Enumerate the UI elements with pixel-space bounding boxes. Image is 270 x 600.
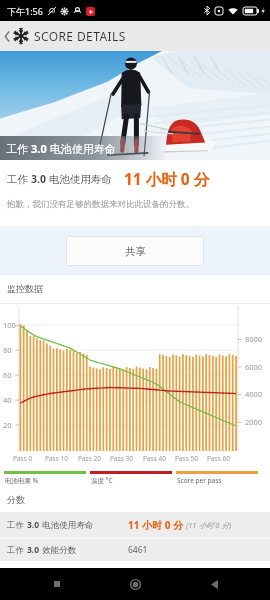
staticText: Pass 30 [110, 454, 133, 463]
staticText: 11 小时 0 分 [128, 518, 183, 532]
button[interactable]: Home [113, 568, 157, 600]
button[interactable]: Recents [35, 568, 79, 600]
staticText: 3.0 [31, 172, 46, 186]
staticText: 6461 [128, 544, 148, 556]
staticText: 2000 [245, 417, 263, 427]
staticText: 3.0 [27, 519, 40, 531]
staticText: 电池使用寿命 [46, 172, 112, 186]
staticText: 40 [3, 395, 12, 405]
staticText: (11 小时 0 分) [186, 520, 232, 530]
staticText: 3.0 [27, 544, 40, 556]
staticText: 效能分数 [40, 544, 77, 556]
staticText: 4000 [245, 389, 263, 399]
staticText: 分数 [7, 494, 25, 505]
staticText: Pass 0 [13, 454, 33, 463]
staticText: 工作 [7, 172, 31, 186]
staticText: Pass 20 [78, 454, 101, 463]
staticText: 工作 [7, 544, 27, 556]
staticText: 8000 [245, 334, 263, 344]
button[interactable]: 工作 [0, 513, 270, 537]
button[interactable]: 工作 [0, 539, 270, 561]
staticText: Pass 60 [207, 454, 230, 463]
staticText: Score per pass [177, 476, 222, 485]
staticText: 100 [3, 320, 16, 330]
staticText: 电池电量 % [5, 476, 39, 485]
staticText: 温度 °C [91, 476, 113, 485]
staticText: 电池使用寿命 [47, 141, 116, 156]
staticText: SCORE DETAILS [34, 28, 126, 44]
staticText: 监控数据 [7, 283, 43, 294]
staticText: 工作 [6, 141, 31, 156]
staticText: 电池使用寿命 [40, 519, 94, 531]
staticText: Pass 10 [45, 454, 68, 463]
staticText: Pass 50 [175, 454, 198, 463]
staticText: 20 [3, 420, 12, 430]
staticText: 11 小时 0 分 [124, 168, 210, 189]
button[interactable]: Back [0, 21, 14, 51]
staticText: 下午1:56 [7, 5, 43, 17]
staticText: 60 [3, 370, 12, 380]
staticText: 6000 [245, 362, 263, 372]
staticText: 共享 [125, 245, 146, 258]
staticText: 工作 [7, 519, 27, 531]
button[interactable]: Back [192, 568, 236, 600]
button[interactable]: 共享 [66, 236, 204, 266]
staticText: 3.0 [31, 141, 47, 156]
staticText: 80 [3, 345, 12, 355]
staticText: 抱歉，我们没有足够的数据来对比此设备的分数。 [7, 199, 194, 210]
staticText: Pass 40 [143, 454, 166, 463]
